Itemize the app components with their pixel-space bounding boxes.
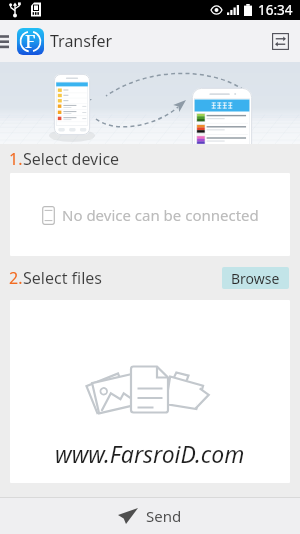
- staticText: Send: [146, 506, 182, 526]
- button[interactable]: www.FarsroiD.com: [10, 300, 290, 483]
- button[interactable]: Send: [0, 498, 300, 534]
- staticText: 16:34: [258, 1, 293, 19]
- staticText: Select device: [23, 148, 120, 170]
- staticText: Transfer: [50, 30, 113, 52]
- staticText: 2.: [9, 267, 23, 289]
- staticText: 1.: [9, 148, 23, 170]
- button[interactable]: No device can be connected: [10, 173, 290, 256]
- button[interactable]: Browse: [222, 267, 289, 289]
- staticText: No device can be connected: [62, 205, 259, 225]
- button[interactable]: Switch transfer direction: [260, 21, 300, 61]
- staticText: www.FarsroiD.com: [55, 438, 245, 469]
- staticText: F: [25, 29, 36, 54]
- staticText: Select files: [23, 267, 103, 289]
- staticText: Browse: [231, 269, 280, 288]
- button[interactable]: Navigation menu: [0, 20, 17, 62]
